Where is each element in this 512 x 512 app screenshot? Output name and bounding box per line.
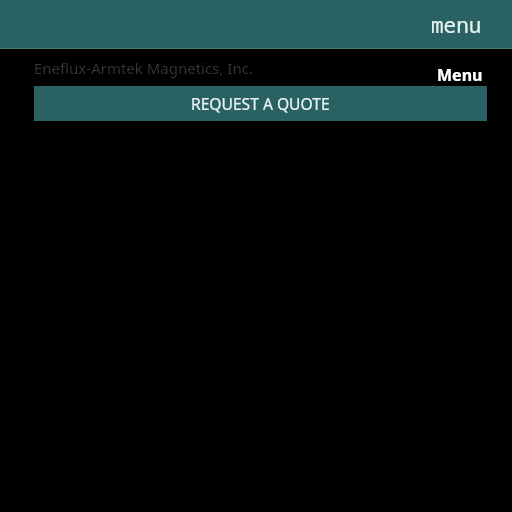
staticText: Eneflux-Armtek Magnetics, Inc. [34,58,253,78]
button[interactable]: menu [424,0,488,49]
button[interactable]: Menu [431,61,489,89]
staticText: REQUEST A QUOTE [191,93,330,114]
staticText: menu [431,11,482,40]
staticText: Menu [437,64,483,86]
button[interactable]: REQUEST A QUOTE [34,86,487,121]
